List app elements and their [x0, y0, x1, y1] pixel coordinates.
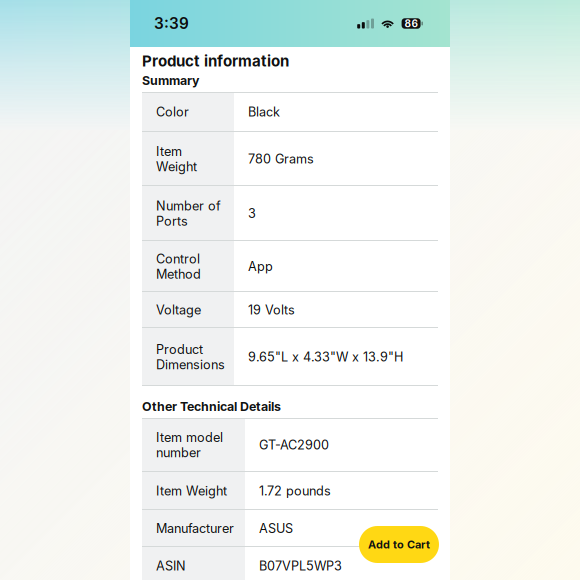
staticText: Item Weight — [156, 144, 197, 174]
staticText: 3 — [248, 206, 256, 221]
staticText: Manufacturer — [156, 521, 234, 536]
staticText: 1.72 pounds — [259, 483, 331, 499]
staticText: GT-AC2900 — [259, 437, 329, 453]
staticText: Black — [248, 104, 280, 120]
staticText: Color — [156, 104, 189, 120]
button[interactable]: Add to Cart — [359, 526, 439, 563]
staticText: ASUS — [259, 521, 293, 536]
staticText: Voltage — [156, 302, 201, 318]
staticText: 3:39 — [154, 14, 189, 33]
staticText: 780 Grams — [248, 151, 314, 167]
staticText: 9.65"L x 4.33"W x 13.9"H — [248, 349, 403, 365]
staticText: App — [248, 259, 273, 274]
staticText: B07VPL5WP3 — [259, 558, 342, 574]
staticText: Summary — [142, 73, 199, 88]
staticText: Item model number — [156, 430, 223, 460]
staticText: Number of Ports — [156, 198, 221, 229]
staticText: ASIN — [156, 558, 186, 574]
staticText: 86 — [405, 17, 418, 30]
staticText: Control Method — [156, 251, 201, 282]
staticText: Add to Cart — [368, 538, 430, 551]
staticText: Item Weight — [156, 483, 227, 499]
staticText: 19 Volts — [248, 302, 295, 318]
staticText: Product information — [142, 52, 289, 70]
staticText: Product Dimensions — [156, 342, 225, 372]
staticText: Other Technical Details — [142, 399, 281, 414]
